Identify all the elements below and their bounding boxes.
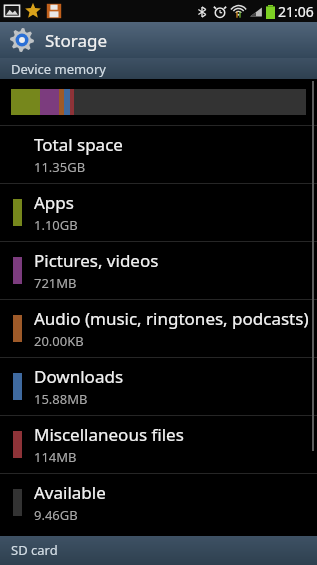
staticText: 9.46GB [34,506,78,524]
staticText: Storage [45,29,108,52]
staticText: Available [34,481,106,504]
button[interactable]: Downloads [0,358,317,415]
staticText: Miscellaneous files [34,423,184,446]
button[interactable]: Apps [0,184,317,241]
staticText: Pictures, videos [34,249,159,272]
other: Settings [9,27,35,53]
staticText: Device memory [11,60,106,78]
staticText: Total space [34,133,123,156]
button[interactable]: Settings [0,22,317,58]
staticText: 11.35GB [34,158,86,176]
button[interactable]: Miscellaneous files [0,416,317,473]
staticText: 721MB [34,274,77,292]
staticText: 21:06 [278,2,314,21]
staticText: 15.88MB [34,390,88,408]
button[interactable]: Audio (music, ringtones, podcasts) [0,300,317,357]
staticText: 1.10GB [34,216,78,234]
button[interactable]: Pictures, videos [0,242,317,299]
staticText: Audio (music, ringtones, podcasts) [34,307,309,330]
staticText: 114MB [34,448,77,466]
staticText: Apps [34,191,74,214]
staticText: Downloads [34,365,124,388]
button[interactable]: Total space [0,126,317,183]
button[interactable]: Available [0,474,317,531]
staticText: 20.00KB [34,332,84,350]
staticText: SD card [11,541,58,559]
